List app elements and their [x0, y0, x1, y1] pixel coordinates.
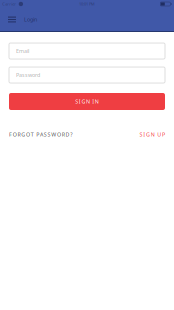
- staticText: Email: [16, 47, 29, 55]
- button[interactable]: SIGN UP: [139, 131, 165, 138]
- staticText: FORGOT PASSWORD?: [9, 131, 72, 138]
- staticText: Login: [24, 16, 37, 23]
- staticText: Carrier: [2, 1, 16, 7]
- staticText: Password: [16, 71, 40, 79]
- staticText: 10:01 PM: [79, 1, 95, 7]
- staticText: SIGN IN: [75, 98, 99, 105]
- button[interactable]: SIGN IN: [9, 93, 165, 110]
- button[interactable]: FORGOT PASSWORD?: [9, 131, 72, 138]
- button[interactable]: Menu: [4, 9, 20, 29]
- staticText: SIGN UP: [139, 131, 165, 138]
